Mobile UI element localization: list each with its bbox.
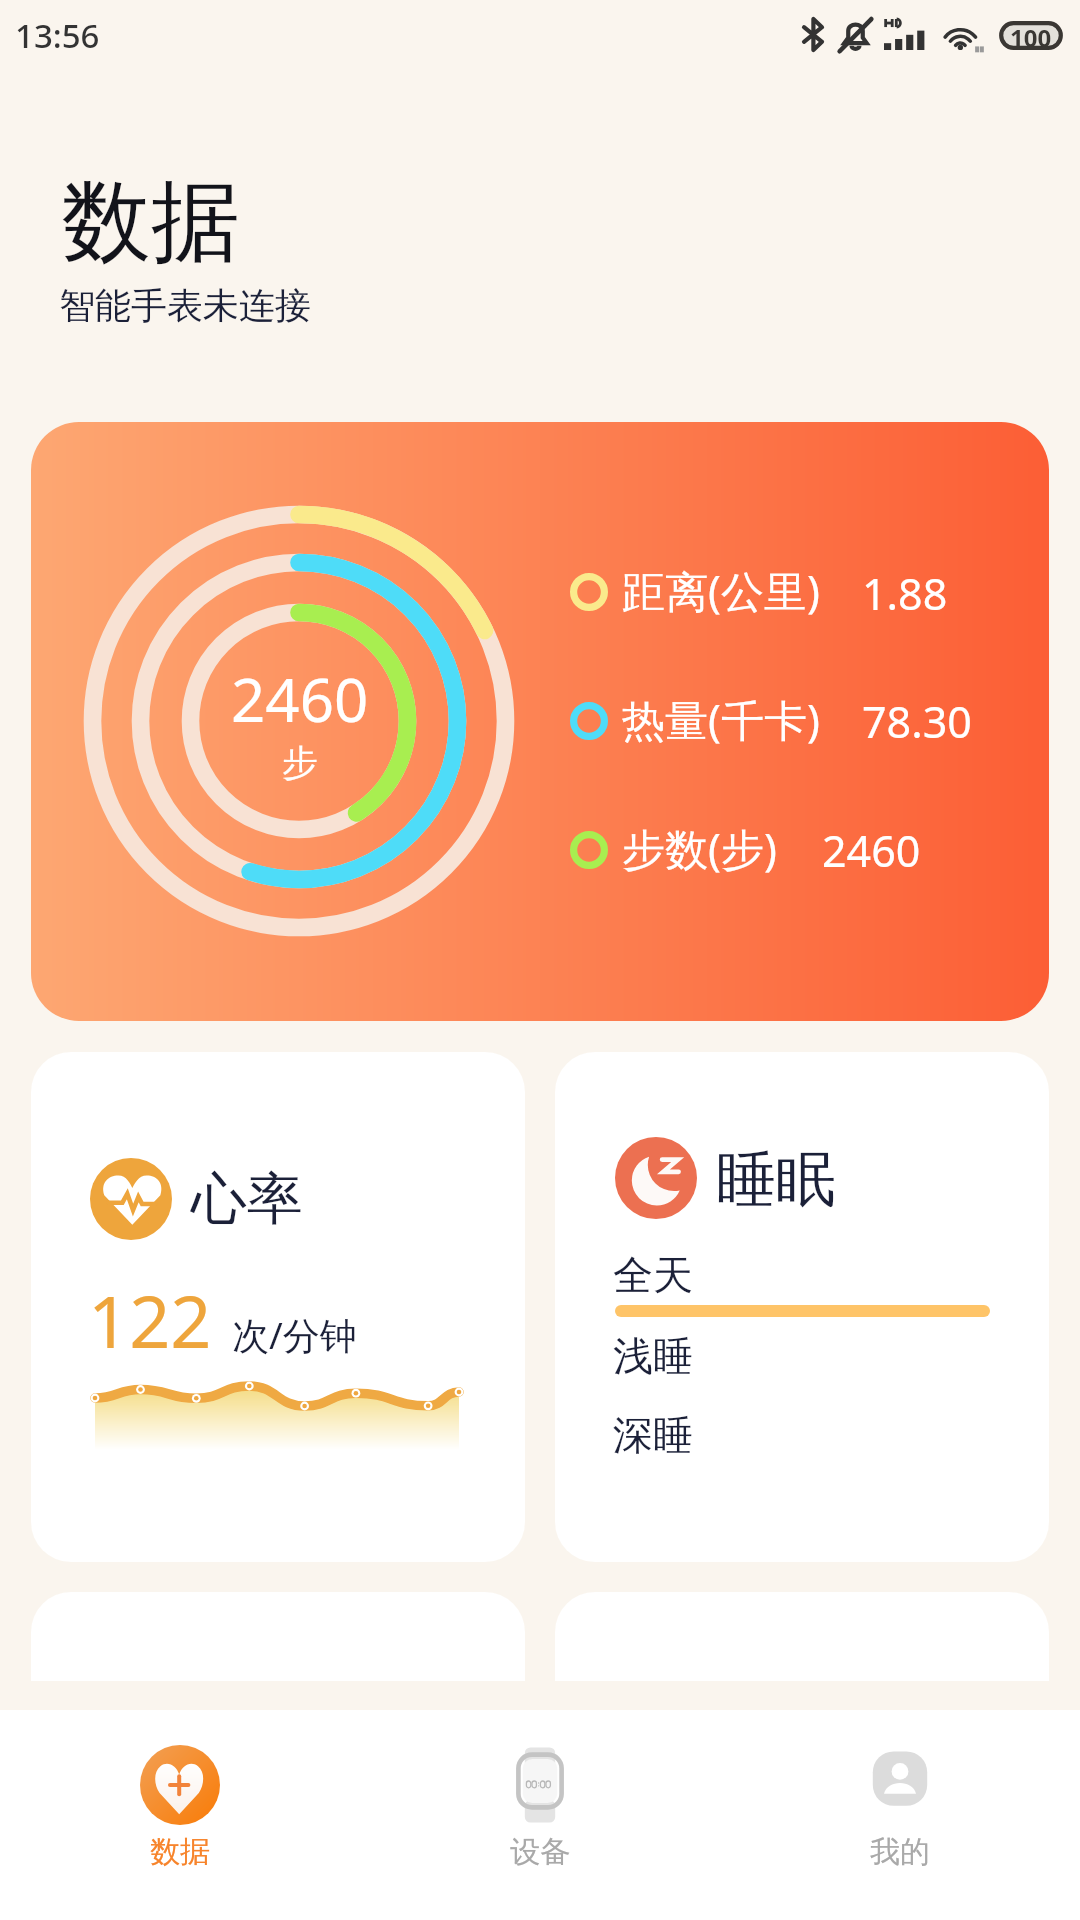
button[interactable]: 数据 Data tab	[0, 1710, 360, 1920]
staticText: 次/分钟	[232, 1309, 357, 1360]
staticText: 2460	[231, 658, 369, 740]
staticText: 13:56	[15, 13, 100, 58]
staticText: 100	[1010, 21, 1052, 50]
button[interactable]: 睡眠	[555, 1052, 1049, 1562]
staticText: 步数(步)	[622, 819, 777, 878]
button[interactable]: 2460	[31, 422, 1049, 1021]
staticText: 数据	[62, 166, 240, 278]
staticText: 步	[282, 740, 318, 785]
staticText: 1.88	[862, 564, 948, 623]
staticText: 心率	[191, 1164, 303, 1235]
button[interactable]: 心率	[31, 1052, 525, 1562]
staticText: 距离(公里)	[622, 561, 820, 620]
staticText: 热量(千卡)	[622, 690, 820, 749]
staticText: 全天	[613, 1250, 693, 1300]
staticText: 数据	[150, 1833, 210, 1871]
staticText: 78.30	[862, 692, 972, 751]
staticText: 深睡	[613, 1410, 693, 1460]
button[interactable]: 我的 Profile tab	[720, 1710, 1080, 1920]
staticText: 2460	[822, 821, 921, 880]
staticText: 设备	[510, 1833, 570, 1871]
staticText: 我的	[870, 1833, 930, 1871]
staticText: 睡眠	[716, 1142, 836, 1218]
other: Bluetooth	[803, 18, 823, 51]
staticText: 浅睡	[613, 1331, 693, 1381]
other: Silent mode	[839, 18, 872, 53]
other: Wi-Fi	[941, 20, 984, 53]
button[interactable]: 设备 Devices tab	[360, 1710, 720, 1920]
staticText: 智能手表未连接	[59, 283, 311, 328]
other: Mobile signal HD	[884, 19, 925, 50]
other: Battery 100 percent	[999, 21, 1063, 50]
staticText: 122	[88, 1271, 212, 1369]
